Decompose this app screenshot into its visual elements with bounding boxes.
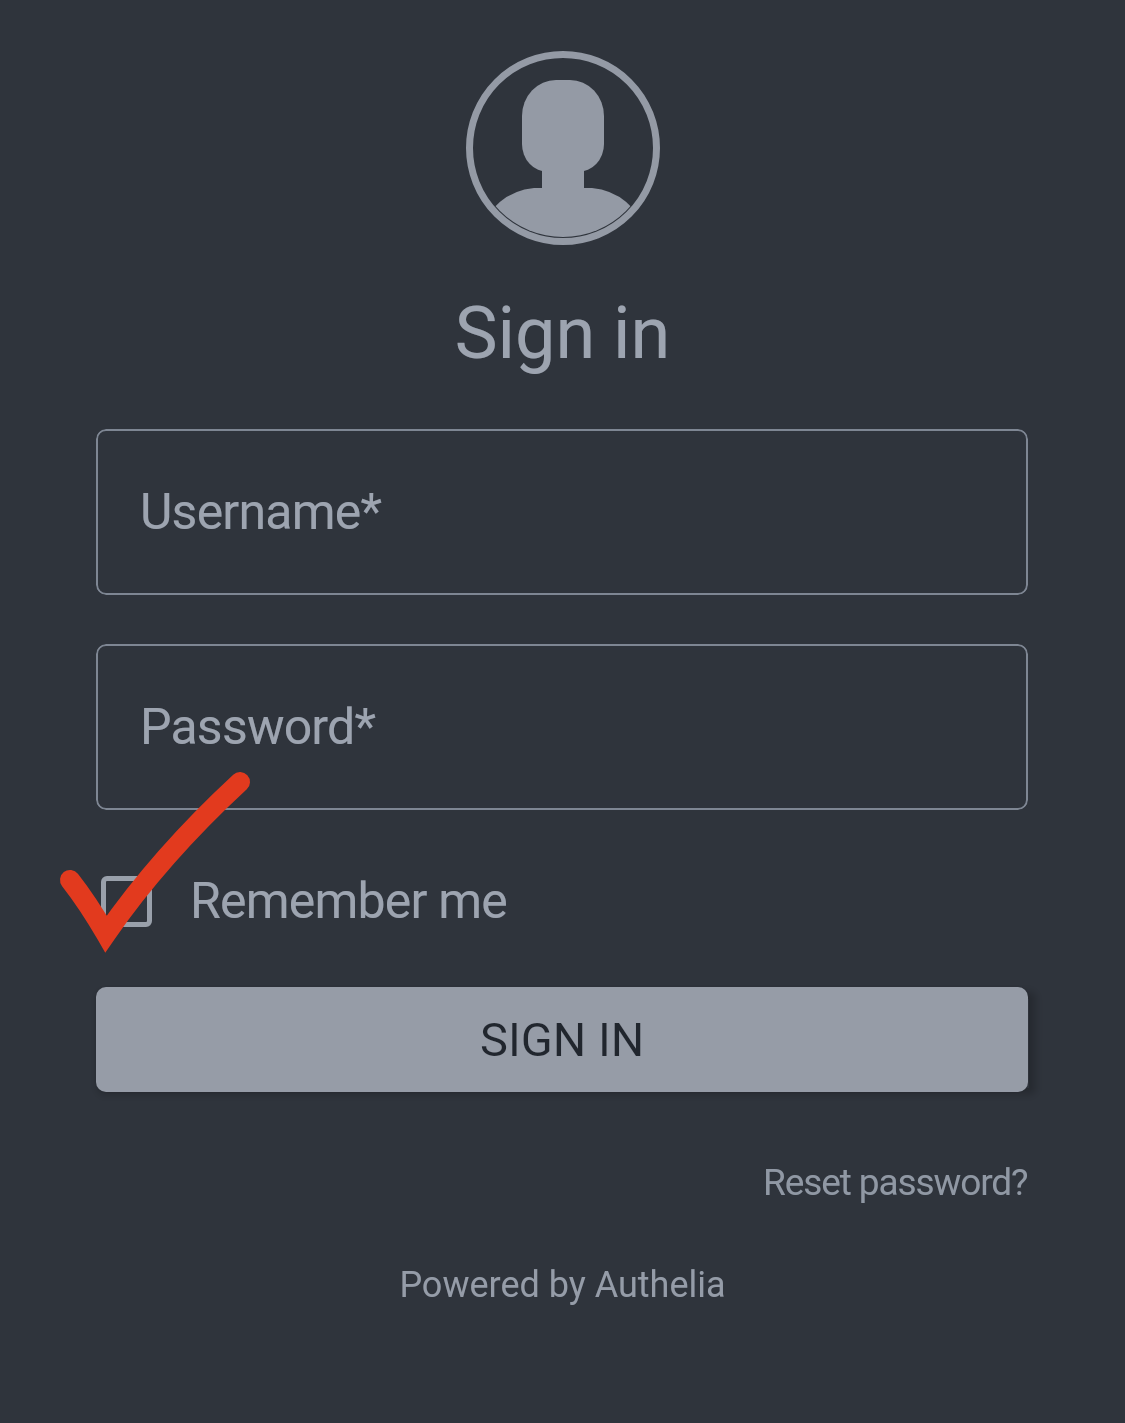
button[interactable]: Remember me (101, 872, 508, 931)
staticText: Powered by Authelia (0, 1264, 1125, 1306)
button[interactable]: Reset password? (763, 1161, 1028, 1204)
staticText: Sign in (0, 291, 1125, 375)
staticText: Password* (140, 698, 376, 757)
staticText: SIGN IN (480, 1012, 645, 1067)
staticText: Remember me (190, 872, 508, 931)
button[interactable]: SIGN IN (96, 987, 1028, 1092)
staticText: Username* (140, 483, 382, 542)
button[interactable]: Password* (96, 644, 1028, 810)
button[interactable]: Username* (96, 429, 1028, 595)
